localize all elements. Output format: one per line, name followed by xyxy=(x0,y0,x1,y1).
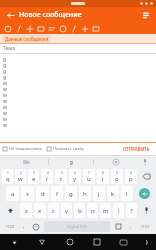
staticText: 0 xyxy=(130,171,132,175)
button[interactable]: c xyxy=(48,203,59,218)
button[interactable]: b xyxy=(74,203,85,218)
button[interactable]: 9 xyxy=(111,169,123,184)
staticText: w xyxy=(3,116,7,122)
button[interactable]: z xyxy=(20,203,32,218)
button[interactable]: 5 xyxy=(55,169,67,184)
staticText: ? xyxy=(130,207,133,215)
button[interactable]: Жирный xyxy=(3,24,12,33)
button[interactable]: Назад xyxy=(28,234,56,250)
staticText: m xyxy=(103,207,109,215)
staticText: Не подписывать xyxy=(9,146,43,152)
button[interactable]: Ввод xyxy=(139,188,150,199)
button[interactable]: x xyxy=(34,203,46,218)
button[interactable]: English (US) xyxy=(44,221,110,232)
staticText: g xyxy=(3,74,7,80)
staticText: 4 xyxy=(47,171,49,175)
staticText: 2 xyxy=(20,171,22,175)
staticText: 9 xyxy=(116,171,118,175)
button[interactable]: 2 xyxy=(15,169,26,184)
staticText: e xyxy=(32,175,36,183)
staticText: z xyxy=(25,207,28,215)
button[interactable]: ?123 xyxy=(1,221,19,232)
staticText: 8 xyxy=(102,171,104,175)
staticText: Новое сообщение xyxy=(19,10,82,20)
button[interactable]: Голосовой ввод xyxy=(138,159,152,165)
button[interactable]: Микрофон xyxy=(139,203,154,218)
button[interactable]: ОТПРАВИТЬ xyxy=(120,144,153,154)
button[interactable]: Настройки xyxy=(111,221,125,232)
button[interactable]: 7 xyxy=(83,169,95,184)
staticText: w xyxy=(3,104,7,110)
button[interactable]: Свернуть клавиатуру xyxy=(0,234,28,250)
button[interactable]: Обзор xyxy=(83,234,110,250)
button[interactable]: j xyxy=(93,186,105,201)
staticText: ) xyxy=(146,239,148,246)
button[interactable]: Ещё xyxy=(140,9,152,21)
button[interactable]: Ещё xyxy=(91,24,100,33)
button[interactable]: 3 xyxy=(28,169,39,184)
button[interactable]: Главный экран xyxy=(56,234,83,250)
button[interactable]: Показать сразу xyxy=(47,145,84,153)
staticText: w xyxy=(3,92,7,98)
button[interactable]: s xyxy=(21,186,34,201)
staticText: ОТПРАВИТЬ xyxy=(123,146,150,152)
staticText: b xyxy=(78,207,82,215)
button[interactable]: Цвет xyxy=(47,24,56,33)
button[interactable]: Подчёркнутый xyxy=(25,24,34,33)
button[interactable]: Тема xyxy=(3,44,156,53)
button[interactable]: f xyxy=(51,186,63,201)
button[interactable]: d xyxy=(36,186,49,201)
staticText: i xyxy=(102,175,104,183)
button[interactable]: Назад xyxy=(4,9,16,21)
button[interactable]: Эмодзи xyxy=(29,221,43,232)
button[interactable]: Ещё xyxy=(137,234,156,250)
button[interactable]: Данные сообщения xyxy=(0,34,156,43)
button[interactable]: ?123 xyxy=(136,221,155,232)
button[interactable]: ! xyxy=(113,203,124,218)
staticText: g xyxy=(3,56,7,62)
button[interactable]: Размер xyxy=(58,24,67,33)
staticText: w xyxy=(18,175,23,183)
staticText: . xyxy=(130,223,132,230)
button[interactable]: n xyxy=(87,203,98,218)
staticText: g xyxy=(3,62,7,68)
staticText: q xyxy=(6,175,10,183)
button[interactable]: Предложения xyxy=(94,159,138,165)
button[interactable]: g xyxy=(65,186,77,201)
staticText: ?123 xyxy=(141,224,150,229)
button[interactable]: We xyxy=(4,159,48,165)
button[interactable]: , xyxy=(19,221,29,232)
button[interactable]: k xyxy=(107,186,119,201)
button[interactable]: 4 xyxy=(41,169,53,184)
button[interactable]: l xyxy=(121,186,133,201)
staticText: 6 xyxy=(74,171,76,175)
button[interactable]: . xyxy=(125,221,136,232)
button[interactable]: h xyxy=(79,186,91,201)
button[interactable]: 8 xyxy=(97,169,109,184)
staticText: x xyxy=(38,207,42,215)
button[interactable]: Курсив xyxy=(14,24,23,33)
button[interactable]: Shift xyxy=(2,203,18,218)
button[interactable]: a xyxy=(6,186,19,201)
button[interactable]: v xyxy=(61,203,72,218)
button[interactable]: Зачёркнутый xyxy=(36,24,45,33)
button[interactable]: Изображение xyxy=(80,24,89,33)
staticText: k xyxy=(111,190,115,198)
staticText: v xyxy=(65,207,69,215)
button[interactable]: Ссылка xyxy=(69,24,78,33)
button[interactable]: g xyxy=(49,159,93,165)
button[interactable]: 1 xyxy=(2,169,13,184)
staticText: n xyxy=(91,207,95,215)
button[interactable]: Удалить xyxy=(139,169,154,184)
button[interactable]: Выбор клавиатуры xyxy=(110,234,137,250)
button[interactable]: Не подписывать xyxy=(3,145,43,153)
staticText: , xyxy=(23,223,25,230)
button[interactable]: m xyxy=(100,203,111,218)
staticText: p xyxy=(129,175,133,183)
staticText: 3 xyxy=(33,171,35,175)
staticText: We xyxy=(23,159,30,165)
button[interactable]: 6 xyxy=(69,169,81,184)
button[interactable]: 0 xyxy=(125,169,137,184)
button[interactable]: ? xyxy=(126,203,137,218)
staticText: Показать сразу xyxy=(53,146,84,152)
